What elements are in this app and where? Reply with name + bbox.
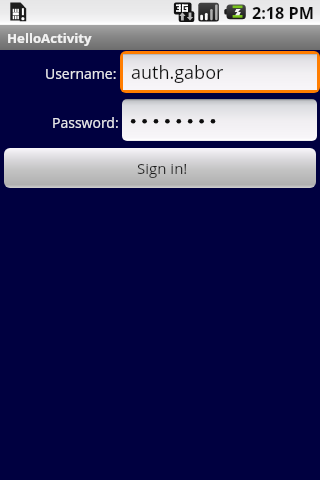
staticText: 2:18 PM — [252, 2, 314, 24]
button[interactable] — [122, 99, 317, 141]
button[interactable]: auth.gabor — [123, 54, 317, 90]
button[interactable]: Sign in! — [4, 148, 316, 188]
staticText: Sign in! — [137, 158, 188, 178]
staticText: HelloActivity — [7, 29, 92, 47]
staticText: Password: — [52, 113, 119, 132]
staticText: Username: — [45, 64, 117, 83]
staticText: auth.gabor — [131, 60, 224, 85]
